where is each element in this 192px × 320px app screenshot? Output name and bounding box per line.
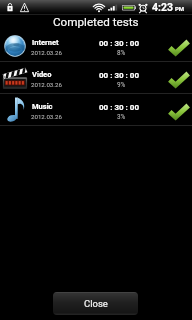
staticText: Internet — [32, 38, 59, 47]
staticText: 2012.03.26 — [31, 49, 62, 56]
button[interactable]: Music — [0, 94, 192, 125]
staticText: Music — [32, 102, 53, 111]
button[interactable]: Close — [53, 292, 138, 315]
staticText: 00 : 30 : 00 — [99, 39, 140, 48]
staticText: 4:23 — [152, 1, 174, 13]
staticText: 8% — [117, 49, 126, 57]
staticText: Close — [84, 298, 108, 309]
staticText: 2012.03.26 — [31, 81, 62, 88]
button[interactable]: Video — [0, 62, 192, 93]
staticText: 3% — [117, 113, 126, 121]
staticText: 00 : 30 : 00 — [99, 103, 140, 112]
staticText: PM — [175, 5, 185, 12]
staticText: 9% — [117, 81, 126, 89]
button[interactable]: Internet — [0, 30, 192, 61]
staticText: 2012.03.26 — [31, 113, 62, 120]
staticText: Video — [32, 70, 52, 79]
staticText: Completed tests — [53, 15, 139, 29]
staticText: 00 : 30 : 00 — [99, 71, 140, 80]
